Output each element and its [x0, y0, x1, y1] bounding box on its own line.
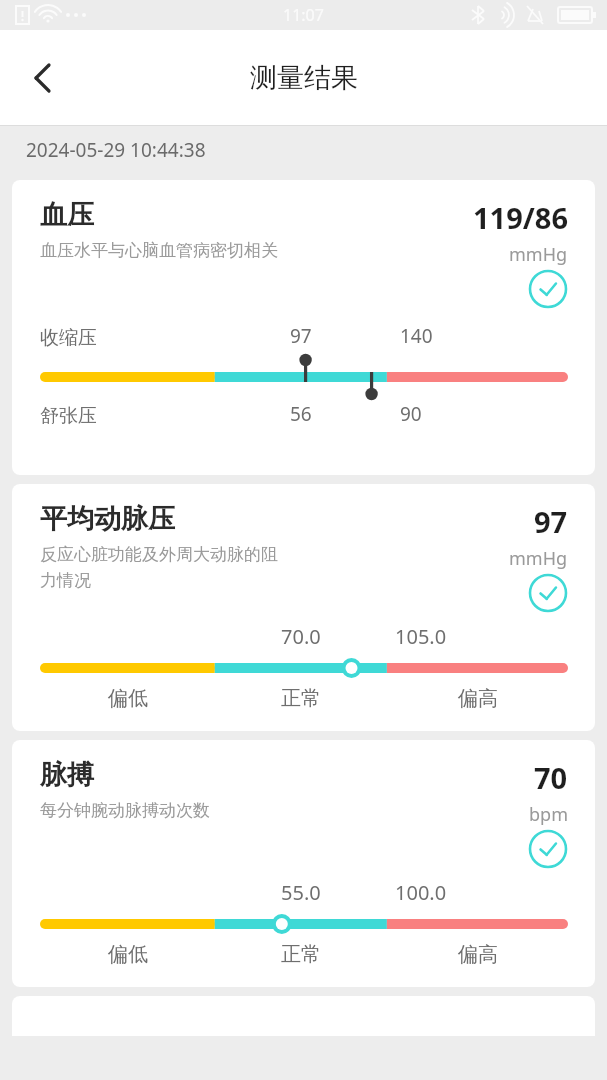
staticText: 90 — [400, 401, 422, 427]
staticText: mmHg — [509, 546, 568, 571]
staticText: 100.0 — [395, 879, 447, 906]
button[interactable]: 血压 — [12, 180, 595, 475]
staticText: 56 — [290, 401, 312, 427]
staticText: 97 — [290, 323, 312, 349]
staticText: 舒张压 — [40, 404, 97, 428]
staticText: 55.0 — [281, 879, 321, 906]
staticText: 正常 — [281, 942, 321, 967]
staticText: 血压水平与心脑血管病密切相关 — [40, 240, 278, 261]
staticText: 105.0 — [395, 623, 447, 650]
staticText: 70 — [534, 758, 568, 797]
staticText: 偏低 — [108, 942, 148, 967]
staticText: 偏低 — [108, 686, 148, 711]
staticText: 正常 — [281, 686, 321, 711]
staticText: mmHg — [509, 242, 568, 267]
staticText: 2024-05-29 10:44:38 — [26, 137, 206, 163]
staticText: 脉搏 — [40, 758, 94, 792]
staticText: 血压 — [40, 198, 94, 232]
staticText: 收缩压 — [40, 326, 97, 350]
staticText: 偏高 — [458, 942, 498, 967]
button[interactable]: 脉搏 — [12, 740, 595, 987]
staticText: 97 — [534, 502, 568, 541]
staticText: 11:07 — [283, 4, 324, 26]
button[interactable]: 平均动脉压 — [12, 484, 595, 731]
staticText: 每分钟腕动脉搏动次数 — [40, 800, 210, 821]
staticText: 平均动脉压 — [40, 502, 175, 536]
staticText: 70.0 — [281, 623, 321, 650]
staticText: 140 — [400, 323, 433, 349]
button[interactable]: Back — [10, 49, 68, 107]
staticText: 偏高 — [458, 686, 498, 711]
staticText: bpm — [529, 802, 568, 827]
staticText: 测量结果 — [250, 61, 358, 95]
staticText: 119/86 — [473, 198, 568, 237]
staticText: 反应心脏功能及外周大动脉的阻 力情况 — [40, 544, 278, 591]
